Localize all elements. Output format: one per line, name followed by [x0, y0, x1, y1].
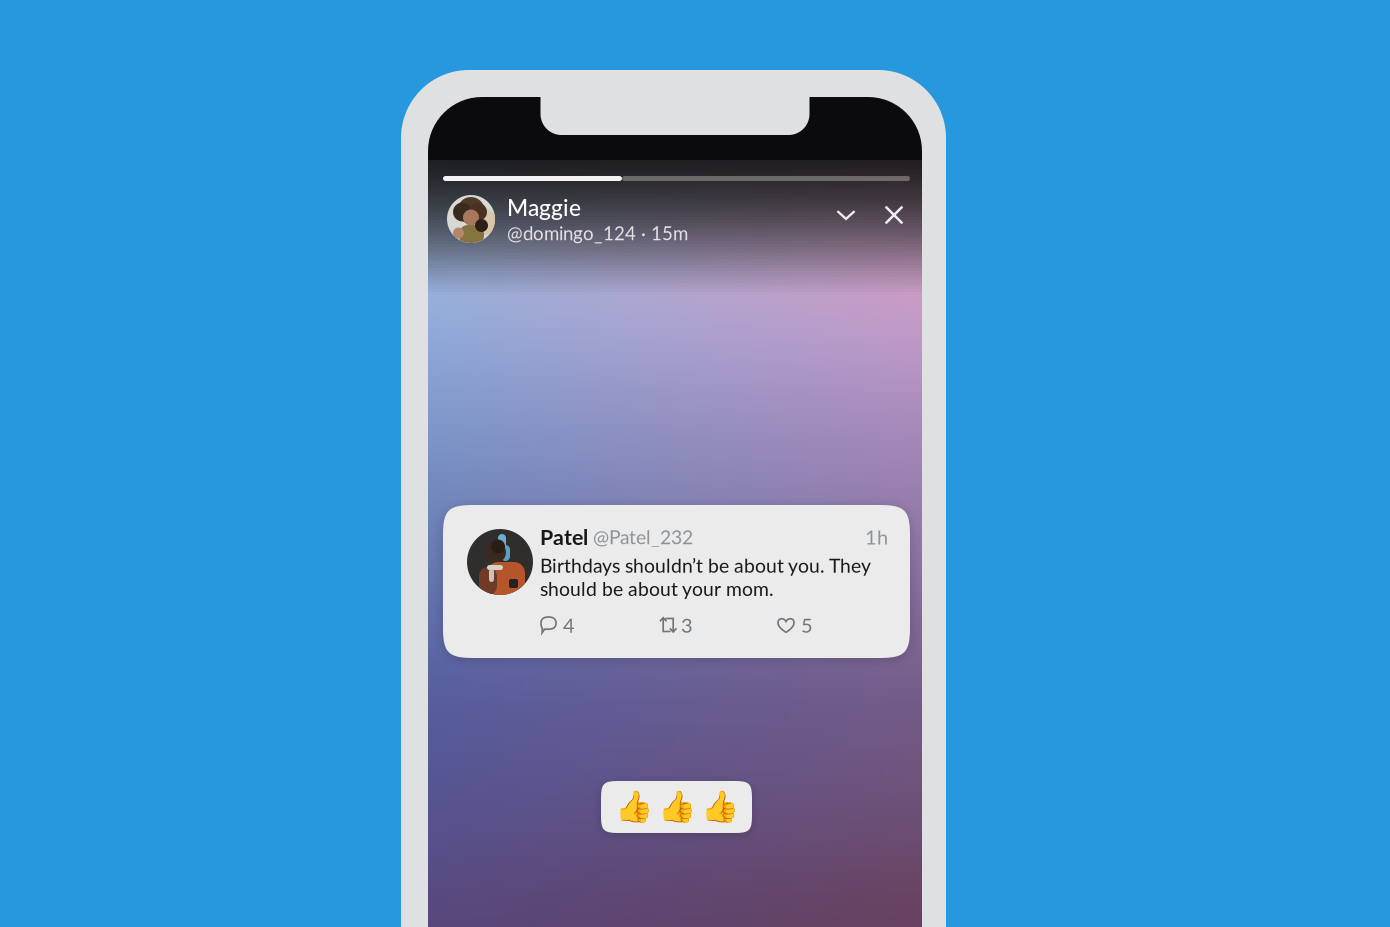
button[interactable]: Maggie: [443, 194, 688, 244]
button[interactable]: Close: [874, 195, 914, 235]
staticText: 5: [801, 613, 813, 637]
staticText: 1h: [865, 525, 888, 549]
staticText: 👍: [700, 789, 738, 825]
button[interactable]: More options: [826, 195, 866, 235]
staticText: Patel: [540, 524, 588, 550]
staticText: 4: [563, 613, 575, 637]
staticText: @domingo_124 · 15m: [507, 222, 688, 244]
staticText: @Patel_232: [588, 525, 693, 548]
staticText: 👍: [657, 789, 695, 825]
button[interactable]: React with thumbs up: [601, 781, 752, 833]
button[interactable]: Patel: [443, 505, 910, 658]
staticText: 👍: [614, 789, 652, 825]
staticText: 3: [681, 613, 693, 637]
staticText: Maggie: [507, 194, 581, 221]
staticText: Birthdays shouldn’t be about you. They s…: [540, 554, 870, 600]
